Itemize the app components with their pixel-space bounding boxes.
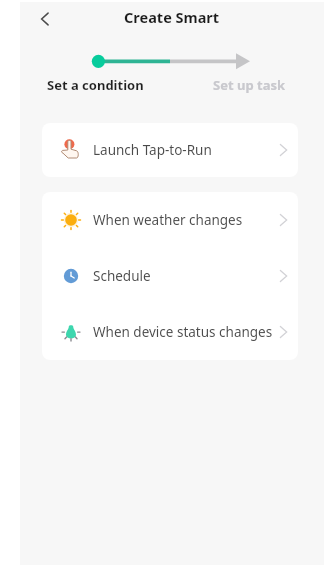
button[interactable]: Launch Tap-to-Run	[42, 123, 298, 177]
staticText: Set up task	[213, 76, 286, 94]
button[interactable]: When device status changes	[42, 304, 298, 360]
button[interactable]: Schedule	[42, 248, 298, 304]
staticText: When weather changes	[93, 211, 243, 229]
button[interactable]: When weather changes	[42, 192, 298, 248]
staticText: Schedule	[93, 267, 151, 285]
button[interactable]: Back	[32, 6, 58, 32]
staticText: Create Smart	[124, 7, 220, 27]
staticText: Set a condition	[47, 76, 144, 94]
staticText: When device status changes	[93, 323, 273, 341]
staticText: Launch Tap-to-Run	[93, 141, 212, 159]
